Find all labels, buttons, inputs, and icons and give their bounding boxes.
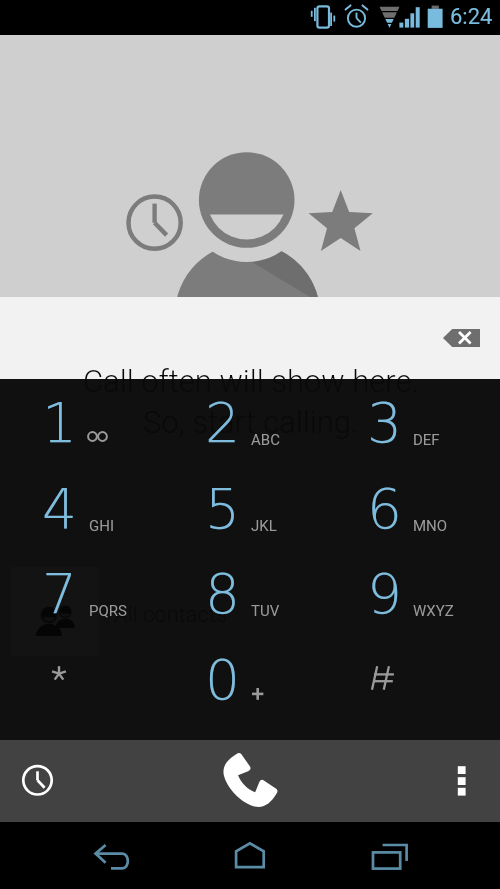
- button[interactable]: [167, 637, 334, 723]
- staticText: 6:24: [450, 4, 493, 30]
- staticText: 9: [367, 562, 402, 626]
- staticText: 5: [205, 477, 240, 541]
- button[interactable]: [0, 637, 167, 723]
- button[interactable]: [167, 466, 334, 552]
- staticText: So, start calling.: [143, 404, 359, 440]
- staticText: MNO: [413, 517, 448, 535]
- button[interactable]: Call: [215, 745, 285, 815]
- staticText: All contacts: [114, 602, 228, 628]
- button[interactable]: Home: [225, 834, 275, 878]
- button[interactable]: Back: [82, 834, 142, 878]
- staticText: Call often will show here.: [83, 363, 419, 399]
- staticText: GHI: [89, 517, 114, 535]
- button[interactable]: [333, 551, 500, 637]
- staticText: 4: [42, 477, 77, 541]
- button[interactable]: [167, 380, 334, 466]
- staticText: 8: [205, 562, 240, 626]
- staticText: 7: [42, 562, 77, 626]
- button[interactable]: [0, 466, 167, 552]
- button[interactable]: [333, 466, 500, 552]
- button[interactable]: Recent apps: [360, 834, 420, 878]
- button[interactable]: [333, 637, 500, 723]
- staticText: PQRS: [89, 602, 127, 620]
- staticText: JKL: [251, 517, 277, 535]
- staticText: 0: [205, 648, 240, 712]
- staticText: WXYZ: [413, 602, 454, 620]
- staticText: 3: [367, 391, 402, 455]
- button[interactable]: Call history: [14, 757, 61, 804]
- staticText: 1: [42, 391, 77, 455]
- button[interactable]: Backspace: [437, 322, 487, 354]
- staticText: 6: [367, 477, 402, 541]
- button[interactable]: [0, 551, 167, 637]
- staticText: DEF: [413, 431, 440, 449]
- staticText: ABC: [251, 431, 280, 449]
- button[interactable]: More options: [440, 757, 484, 801]
- button[interactable]: [0, 380, 167, 466]
- button[interactable]: [333, 380, 500, 466]
- staticText: 2: [205, 391, 240, 455]
- staticText: TUV: [251, 602, 280, 620]
- button[interactable]: [167, 551, 334, 637]
